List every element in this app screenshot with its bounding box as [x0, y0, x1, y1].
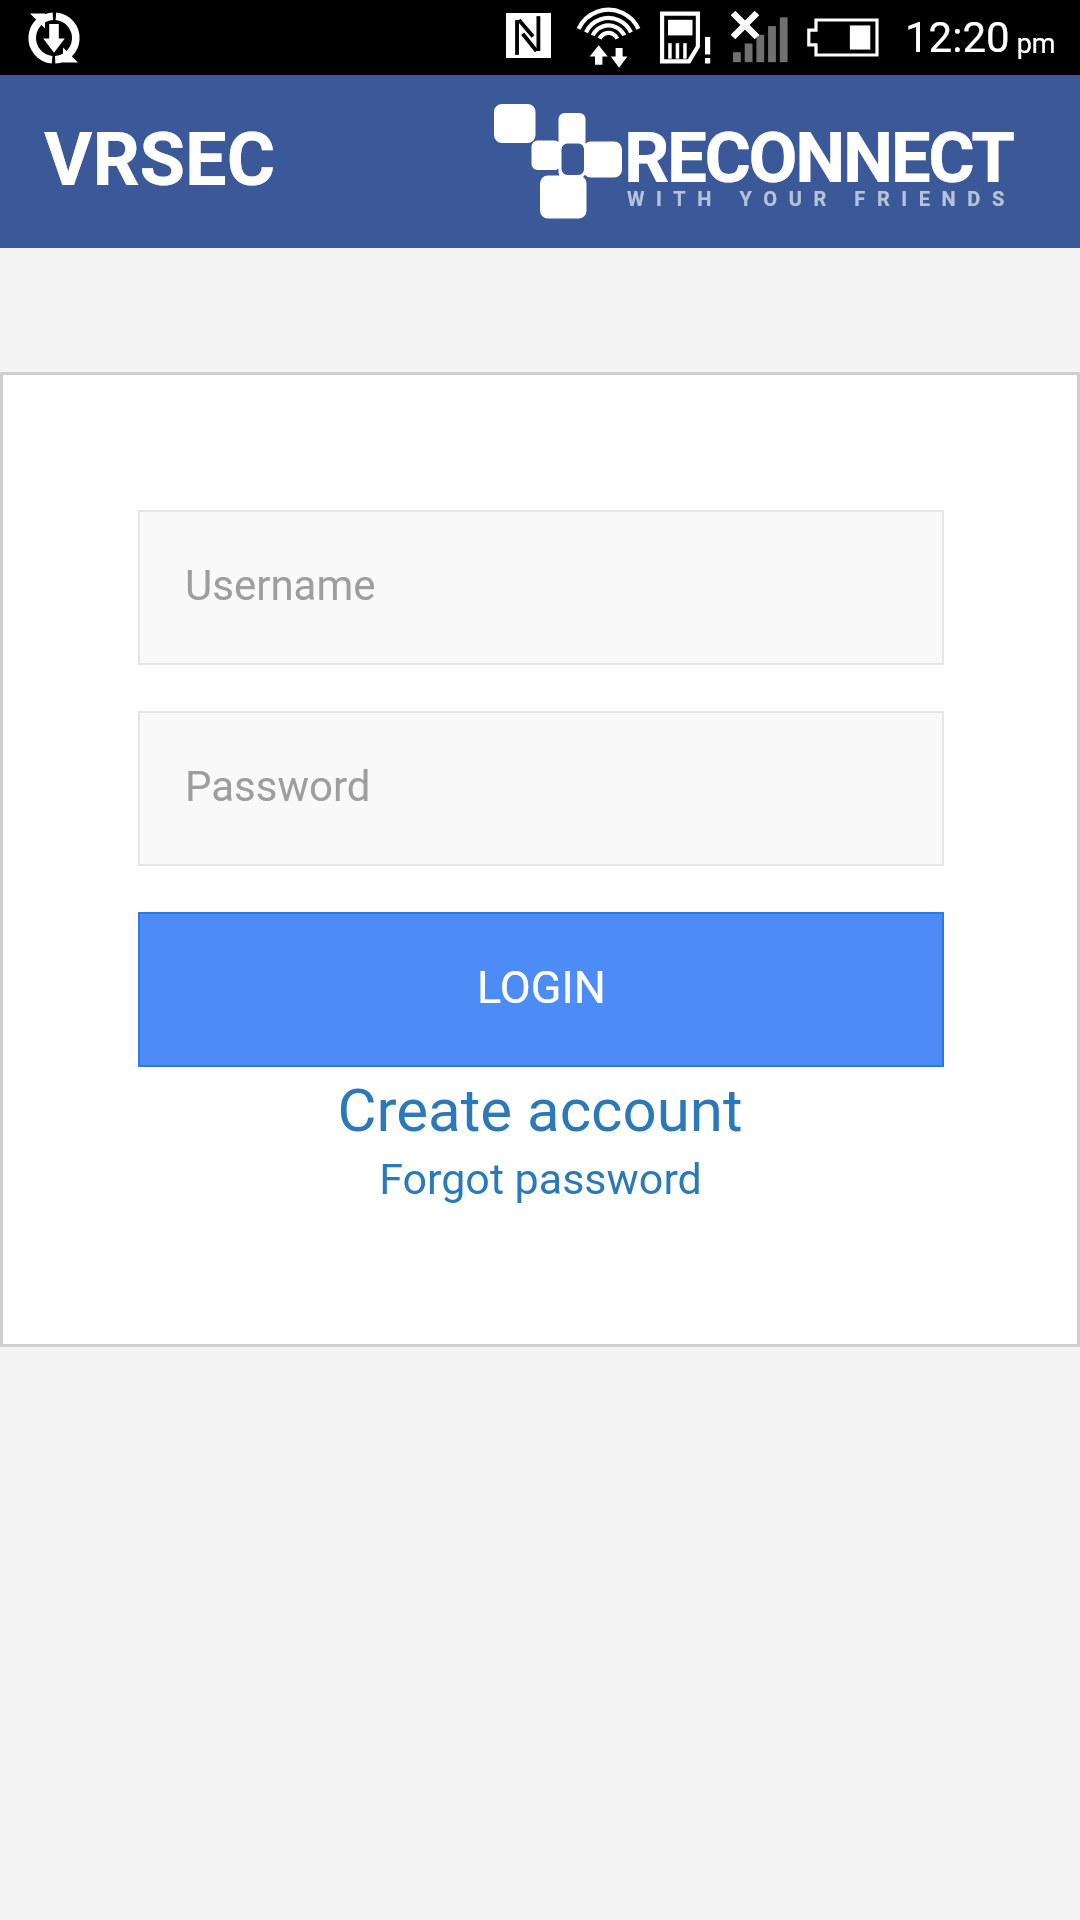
staticText: Forgot password [379, 1154, 702, 1204]
button[interactable]: Create account [0, 1072, 1080, 1147]
button[interactable]: Forgot password [0, 1147, 1080, 1211]
staticText: Username [185, 561, 376, 610]
staticText: LOGIN [477, 961, 606, 1014]
staticText: Create account [337, 1075, 743, 1145]
button[interactable]: Username [138, 510, 944, 665]
staticText: Password [185, 762, 371, 811]
staticText: VRSEC [44, 116, 276, 203]
other: Reconnect logo [0, 75, 1080, 248]
button[interactable]: LOGIN [138, 912, 944, 1067]
staticText: WITH YOUR FRIENDS [627, 187, 1016, 210]
staticText: 12:20 [905, 13, 1010, 62]
other: Status icons: sync, NFC, Wi-Fi, SIM aler… [0, 0, 1080, 75]
staticText: pm [1010, 28, 1056, 60]
button[interactable]: Password [138, 711, 944, 866]
staticText: RECONNECT [624, 116, 1013, 199]
